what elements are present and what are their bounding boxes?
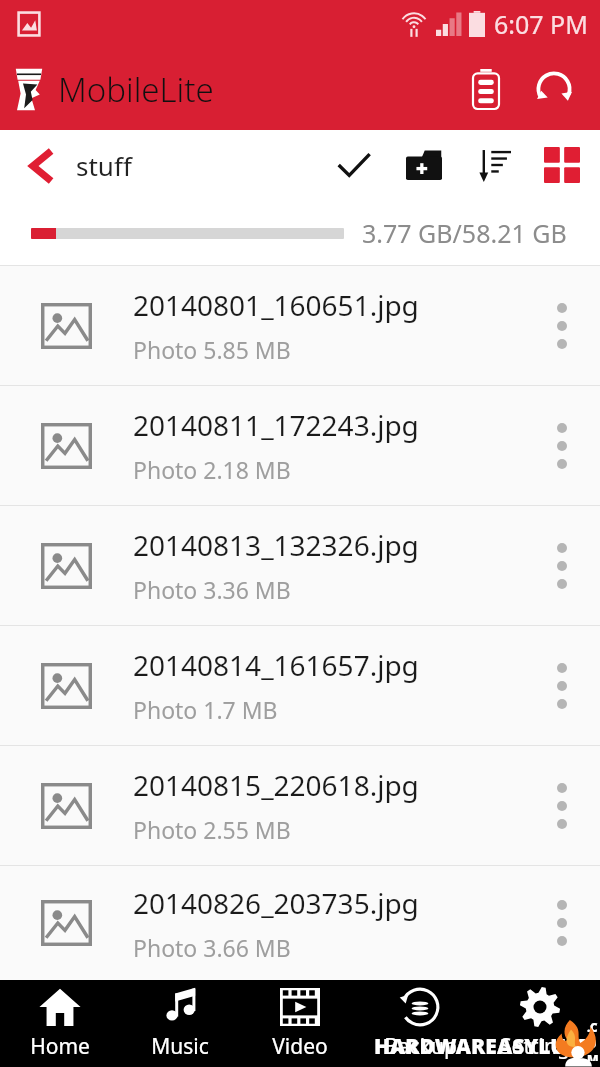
staticText: Photo 2.55 MB [133, 814, 291, 845]
button[interactable]: 20140811_172243.jpg [0, 386, 600, 505]
button[interactable]: Refresh [528, 63, 580, 115]
staticText: Photo 5.85 MB [133, 334, 291, 365]
staticText: 6:07 PM [494, 7, 588, 41]
button[interactable]: 20140801_160651.jpg [0, 266, 600, 385]
button[interactable]: More options [524, 626, 600, 745]
button[interactable]: More options [524, 506, 600, 625]
button[interactable]: 20140814_161657.jpg [0, 626, 600, 745]
staticText: Photo 3.66 MB [133, 932, 291, 963]
button[interactable]: 20140813_132326.jpg [0, 506, 600, 625]
staticText: 20140814_161657.jpg [133, 646, 419, 684]
button[interactable]: More options [524, 266, 600, 385]
staticText: Photo 2.18 MB [133, 454, 291, 485]
staticText: 20140826_203735.jpg [133, 884, 419, 922]
button[interactable]: Music [120, 980, 240, 1067]
button[interactable]: Home [0, 980, 120, 1067]
staticText: stuff [76, 148, 132, 183]
button[interactable]: Sort [470, 141, 518, 189]
staticText: 20140801_160651.jpg [133, 286, 419, 324]
staticText: 20140813_132326.jpg [133, 526, 419, 564]
button[interactable]: Device storage [460, 63, 512, 115]
staticText: MobileLite [58, 67, 214, 112]
staticText: ASYLUM [497, 1032, 587, 1061]
staticText: Photo 3.36 MB [133, 574, 291, 605]
button[interactable]: Grid view [538, 141, 586, 189]
button[interactable]: Video [240, 980, 360, 1067]
staticText: Photo 1.7 MB [133, 694, 278, 725]
button[interactable]: More options [524, 746, 600, 865]
staticText: Home [30, 1032, 90, 1061]
button[interactable]: 20140826_203735.jpg [0, 866, 600, 980]
button[interactable]: More options [524, 866, 600, 980]
staticText: .COM [587, 1019, 600, 1061]
button[interactable]: Select [330, 141, 378, 189]
staticText: HARDWARE [374, 1032, 497, 1061]
staticText: 3.77 GB/58.21 GB [362, 216, 567, 250]
other: Back [30, 149, 54, 183]
staticText: 20140811_172243.jpg [133, 406, 419, 444]
staticText: Backup [384, 1032, 457, 1061]
button[interactable]: New folder [400, 141, 448, 189]
staticText: Settings [500, 1032, 580, 1061]
button[interactable]: More options [524, 386, 600, 505]
staticText: Video [272, 1032, 328, 1061]
button[interactable]: Settings [480, 980, 600, 1067]
button[interactable]: 20140815_220618.jpg [0, 746, 600, 865]
staticText: 20140815_220618.jpg [133, 766, 419, 804]
staticText: Music [151, 1032, 209, 1061]
button[interactable]: Backup [360, 980, 480, 1067]
button[interactable]: Back [30, 148, 132, 183]
